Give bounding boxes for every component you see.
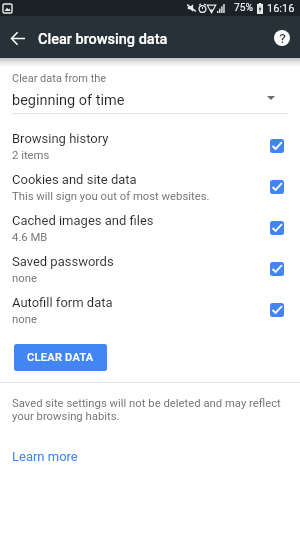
- button[interactable]: Help: [266, 22, 298, 54]
- button[interactable]: beginning of time: [0, 85, 300, 111]
- staticText: 75%: [234, 2, 253, 14]
- staticText: 2 items: [12, 149, 50, 162]
- button[interactable]: Saved passwords: [0, 248, 300, 289]
- staticText: Saved site settings will not be deleted …: [12, 397, 292, 422]
- staticText: Saved passwords: [12, 254, 114, 269]
- staticText: Learn more: [12, 449, 78, 464]
- staticText: beginning of time: [12, 92, 125, 109]
- staticText: none: [12, 272, 37, 285]
- staticText: Cookies and site data: [12, 172, 137, 187]
- staticText: Browsing history: [12, 131, 109, 146]
- button[interactable]: Learn more: [6, 445, 84, 468]
- staticText: CLEAR DATA: [27, 351, 94, 364]
- staticText: Cached images and files: [12, 213, 154, 228]
- button[interactable]: CLEAR DATA: [14, 344, 107, 371]
- staticText: This will sign you out of most websites.: [12, 190, 210, 203]
- button[interactable]: Cookies and site data: [0, 166, 300, 207]
- button[interactable]: Browsing history: [0, 125, 300, 166]
- staticText: 16:16: [267, 2, 295, 15]
- staticText: Clear browsing data: [38, 31, 168, 48]
- staticText: ?: [279, 30, 286, 46]
- button[interactable]: Cached images and files: [0, 207, 300, 248]
- staticText: 4.6 MB: [12, 231, 48, 244]
- button[interactable]: Back: [2, 22, 34, 54]
- staticText: none: [12, 313, 37, 326]
- staticText: Autofill form data: [12, 295, 113, 310]
- staticText: Clear data from the: [12, 72, 107, 85]
- button[interactable]: Autofill form data: [0, 289, 300, 330]
